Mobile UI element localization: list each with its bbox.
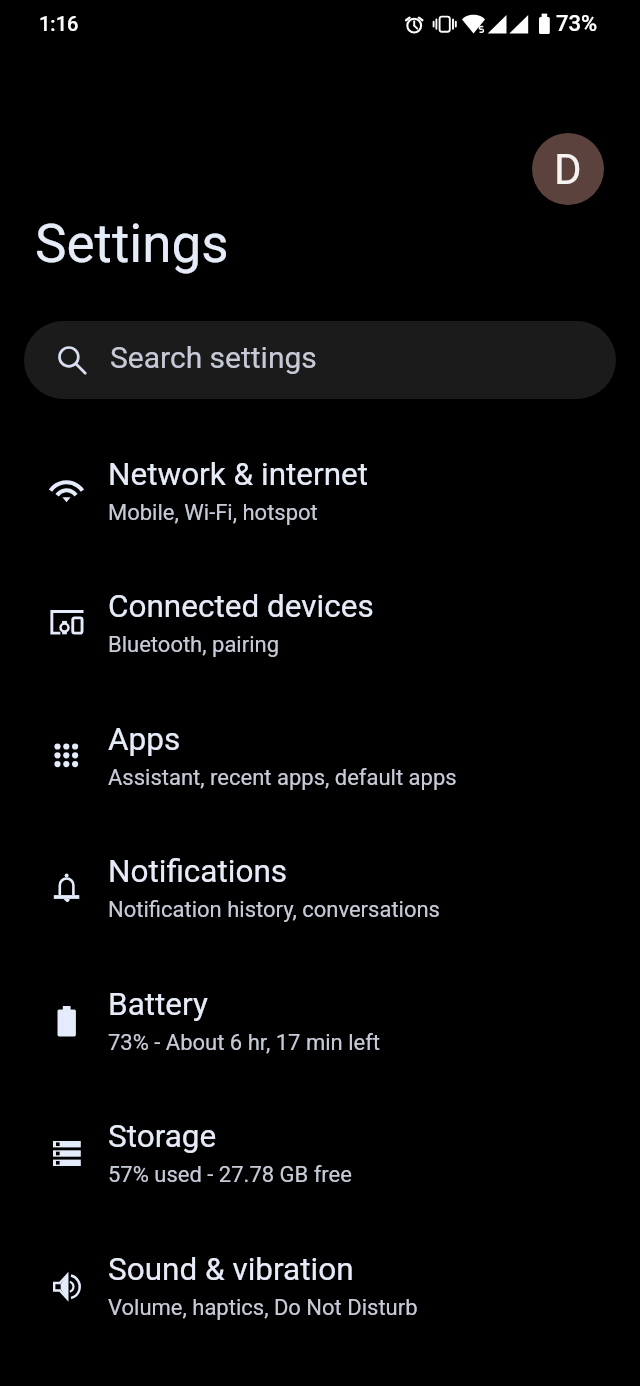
staticText: 1:16 (39, 12, 79, 35)
staticText: Settings (35, 213, 229, 275)
staticText: D (554, 145, 582, 194)
staticText: Connected devices (108, 588, 374, 625)
staticText: Apps (108, 721, 181, 758)
staticText: Network & internet (108, 456, 369, 493)
staticText: Sound & vibration (108, 1251, 354, 1288)
staticText: Search settings (110, 340, 317, 375)
button[interactable]: Network & internet (0, 421, 640, 554)
staticText: Notifications (108, 853, 288, 890)
staticText: 57% used - 27.78 GB free (108, 1162, 352, 1188)
button[interactable]: Connected devices (0, 553, 640, 686)
staticText: 73% - About 6 hr, 17 min left (108, 1030, 381, 1056)
button[interactable]: Sound & vibration (0, 1216, 640, 1349)
button[interactable]: Account (532, 133, 604, 205)
staticText: Notification history, conversations (108, 897, 440, 923)
staticText: 73% (556, 11, 598, 37)
staticText: Battery (108, 986, 208, 1023)
staticText: Storage (108, 1118, 217, 1155)
staticText: Volume, haptics, Do Not Disturb (108, 1295, 418, 1321)
staticText: Mobile, Wi-Fi, hotspot (108, 500, 318, 526)
button[interactable]: Battery (0, 951, 640, 1084)
button[interactable]: Notifications (0, 818, 640, 951)
staticText: Assistant, recent apps, default apps (108, 765, 457, 791)
button[interactable]: Search settings (24, 321, 616, 399)
button[interactable]: Storage (0, 1083, 640, 1216)
staticText: Bluetooth, pairing (108, 632, 280, 658)
button[interactable]: Apps (0, 686, 640, 819)
